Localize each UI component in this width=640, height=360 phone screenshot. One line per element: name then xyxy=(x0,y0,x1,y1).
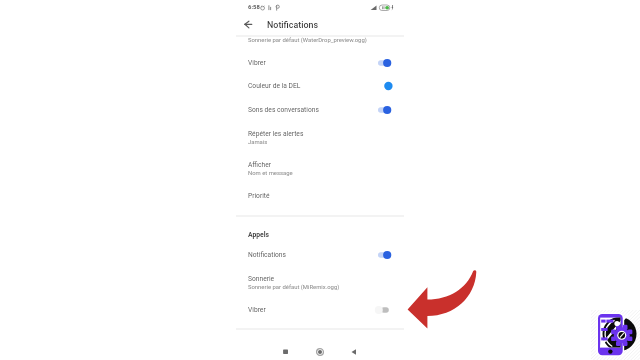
staticText: Notifications xyxy=(267,20,319,30)
button[interactable]: Notifications xyxy=(236,244,404,266)
staticText: Nom et message xyxy=(248,170,293,177)
staticText: Afficher xyxy=(248,161,272,169)
staticText: Sons des conversations xyxy=(248,106,319,114)
button[interactable]: Répéter les alertes xyxy=(236,123,404,145)
button[interactable]: Sons des conversations xyxy=(236,99,404,121)
staticText: Sonnerie par défaut (MiRemix.ogg) xyxy=(248,284,340,291)
button[interactable]: Toggle on xyxy=(374,248,394,262)
button[interactable]: LED colour xyxy=(374,79,394,93)
staticText: Appels xyxy=(248,231,270,239)
staticText: 6:58 xyxy=(248,4,260,11)
staticText: Vibrer xyxy=(248,306,266,314)
staticText: Jamais xyxy=(248,139,268,146)
button[interactable]: Sonnerie xyxy=(236,268,404,290)
staticText: Notifications xyxy=(248,251,287,259)
staticText: Couleur de la DEL xyxy=(248,82,301,90)
staticText: Vibrer xyxy=(248,59,266,67)
button[interactable]: Afficher xyxy=(236,154,404,176)
button[interactable]: Vibrer xyxy=(236,52,404,74)
button[interactable]: Home xyxy=(312,344,328,360)
button[interactable]: Back xyxy=(346,344,362,360)
button[interactable]: Toggle on xyxy=(374,103,394,117)
button[interactable]: Toggle off xyxy=(374,303,394,317)
button[interactable]: Back xyxy=(238,14,258,34)
button[interactable]: Vibrer xyxy=(236,299,404,321)
button[interactable]: Couleur de la DEL xyxy=(236,75,404,97)
button[interactable]: Toggle on xyxy=(374,56,394,70)
staticText: Sonnerie xyxy=(248,275,275,283)
staticText: Répéter les alertes xyxy=(248,130,304,138)
button[interactable]: Recent apps xyxy=(278,344,294,360)
staticText: Sonnerie par défaut (WaterDrop_preview.o… xyxy=(248,37,367,44)
staticText: Priorité xyxy=(248,192,270,200)
button[interactable]: Priorité xyxy=(236,185,404,207)
